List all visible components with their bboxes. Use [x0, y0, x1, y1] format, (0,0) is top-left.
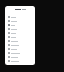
- button[interactable]: Security and privacy: [5, 55, 35, 59]
- button[interactable]: Accessibility: [5, 51, 35, 55]
- button[interactable]: Storage: [5, 35, 35, 39]
- button[interactable]: Network and internet: [5, 15, 35, 19]
- button[interactable]: Notifications: [5, 27, 35, 31]
- button[interactable]: Connected devices: [5, 19, 35, 23]
- button[interactable]: Battery: [5, 31, 35, 35]
- other: Apps: [8, 24, 10, 26]
- button[interactable]: Apps: [5, 23, 35, 27]
- button[interactable]: Wallpaper and style: [5, 47, 35, 51]
- button[interactable]: Location: [5, 59, 35, 63]
- button[interactable]: Display: [5, 43, 35, 47]
- button[interactable]: Sound and vibration: [5, 39, 35, 43]
